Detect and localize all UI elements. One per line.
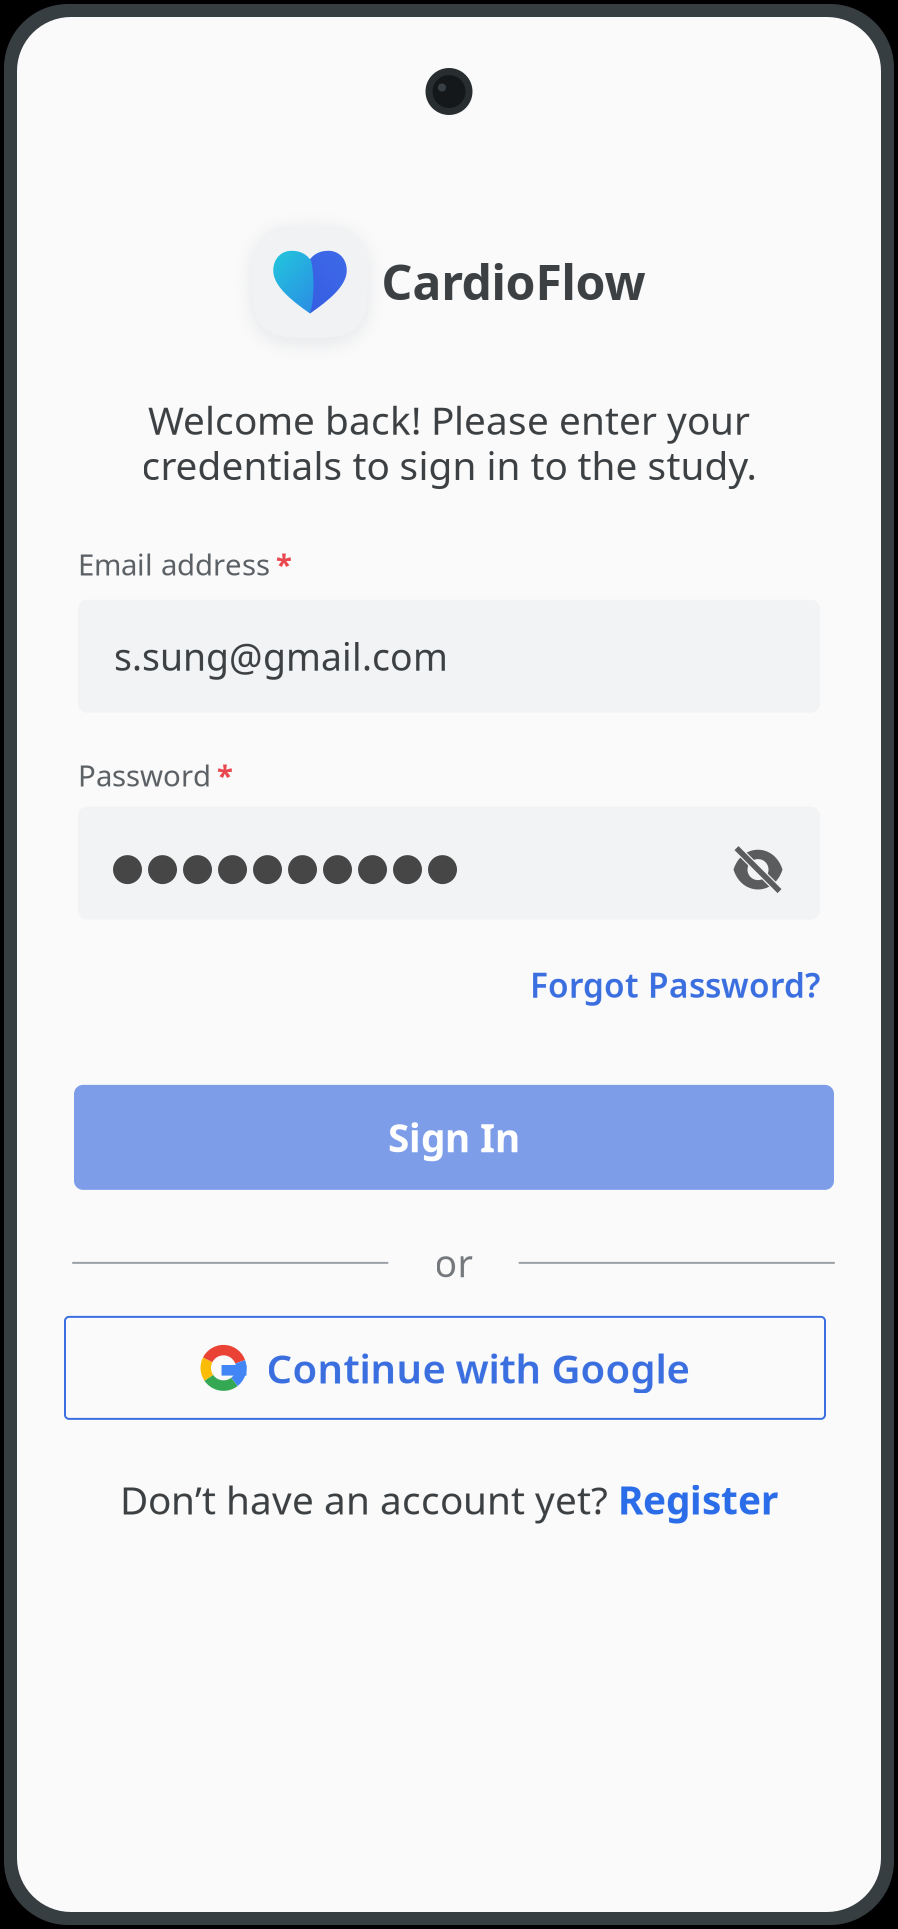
staticText: CardioFlow xyxy=(381,250,645,313)
button[interactable]: Sign In xyxy=(74,1085,834,1190)
button[interactable]: Continue with Google xyxy=(65,1317,825,1419)
button[interactable]: Show password xyxy=(731,830,785,897)
staticText: Continue with Google xyxy=(266,1341,689,1394)
staticText: or xyxy=(434,1238,472,1288)
staticText: * xyxy=(217,756,233,795)
staticText: Email address xyxy=(78,545,270,584)
button[interactable]: Forgot Password? xyxy=(530,963,820,1007)
staticText: Welcome back! Please enter your xyxy=(148,394,750,445)
staticText: * xyxy=(276,545,292,584)
staticText: Register xyxy=(618,1474,778,1525)
staticText: Don’t have an account yet? xyxy=(120,1474,618,1525)
staticText: Password xyxy=(78,756,211,795)
button[interactable]: Register xyxy=(618,1474,778,1525)
staticText: credentials to sign in to the study. xyxy=(141,439,756,491)
staticText: Sign In xyxy=(388,1112,520,1163)
staticText: Forgot Password? xyxy=(530,963,820,1007)
staticText: s.sung@gmail.com xyxy=(114,631,448,681)
